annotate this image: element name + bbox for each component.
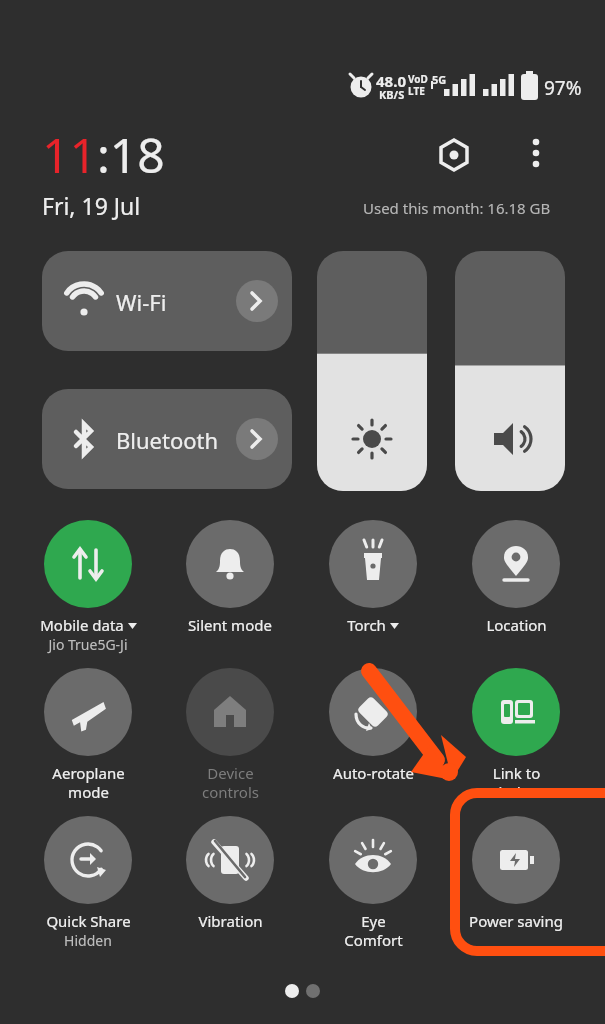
- staticText: Device controls: [202, 763, 259, 802]
- staticText: Hidden: [64, 931, 112, 950]
- staticText: Vibration: [198, 911, 263, 931]
- staticText: KB/S: [379, 87, 405, 102]
- button[interactable]: Power saving: [454, 816, 578, 931]
- staticText: :18: [97, 122, 165, 187]
- staticText: Link to Windows: [484, 763, 549, 802]
- staticText: Location: [486, 615, 547, 635]
- button[interactable]: Silent mode: [168, 520, 292, 635]
- button[interactable]: Mobile data: [26, 520, 150, 654]
- button[interactable]: Bluetooth settings: [236, 418, 278, 460]
- staticText: Wi-Fi: [116, 287, 167, 317]
- staticText: Aeroplane mode: [52, 763, 125, 802]
- staticText: Torch: [347, 615, 386, 635]
- staticText: Bluetooth: [116, 425, 219, 455]
- staticText: Quick Share: [46, 911, 131, 931]
- staticText: Jio True5G-Ji: [48, 635, 128, 654]
- button[interactable]: Location: [454, 520, 578, 635]
- button[interactable]: Bluetooth: [42, 389, 292, 489]
- button[interactable]: Link to Windows: [454, 668, 578, 802]
- staticText: 11: [42, 122, 97, 187]
- staticText: Mobile data: [40, 615, 124, 635]
- button[interactable]: Eye Comfort: [311, 816, 435, 950]
- staticText: 97%: [544, 75, 582, 101]
- staticText: 48.0: [376, 71, 406, 91]
- button[interactable]: Wi-Fi: [42, 251, 292, 351]
- staticText: VoD: [408, 72, 428, 86]
- button[interactable]: Wi-Fi settings: [236, 280, 278, 322]
- staticText: LTE: [408, 84, 425, 98]
- button[interactable]: Aeroplane mode: [26, 668, 150, 802]
- staticText: Power saving: [469, 911, 563, 931]
- button[interactable]: Auto-rotate: [311, 668, 435, 783]
- button[interactable]: More options: [514, 131, 558, 175]
- button[interactable]: Brightness: [317, 251, 427, 491]
- staticText: Fri, 19 Jul: [42, 190, 141, 221]
- button[interactable]: Torch: [311, 520, 435, 635]
- button[interactable]: Quick Share: [26, 816, 150, 950]
- button[interactable]: Volume: [455, 251, 565, 491]
- staticText: Used this month: 16.18 GB: [363, 198, 551, 218]
- button[interactable]: Device controls: [168, 668, 292, 802]
- staticText: Silent mode: [188, 615, 272, 635]
- button[interactable]: Settings: [430, 131, 478, 179]
- staticText: Eye Comfort: [344, 911, 403, 950]
- staticText: Auto-rotate: [333, 763, 414, 783]
- staticText: 5G: [432, 72, 447, 87]
- button[interactable]: Vibration: [168, 816, 292, 931]
